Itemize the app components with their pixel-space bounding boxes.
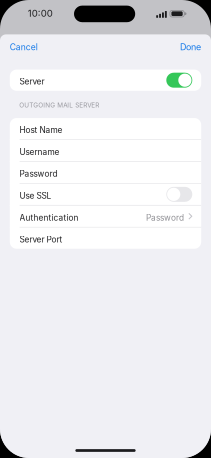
staticText: Server — [20, 77, 45, 87]
staticText: Password — [146, 213, 184, 223]
button[interactable]: Password — [10, 162, 201, 183]
button[interactable]: Use SSL — [10, 184, 201, 205]
staticText: Done — [180, 42, 201, 52]
staticText: Authentication — [20, 213, 79, 223]
staticText: 10:00 — [28, 7, 53, 19]
staticText: Use SSL — [20, 191, 52, 201]
button[interactable]: Host Name — [10, 118, 201, 139]
staticText: OUTGOING MAIL SERVER — [19, 101, 99, 109]
staticText: Cancel — [10, 42, 38, 52]
button[interactable]: Authentication — [10, 206, 201, 227]
staticText: Server Port — [20, 234, 63, 244]
button[interactable]: Server Port — [10, 227, 201, 249]
staticText: Host Name — [20, 125, 63, 135]
button[interactable]: Cancel — [0, 36, 45, 58]
button[interactable]: Done — [173, 36, 211, 58]
staticText: Password — [20, 169, 58, 179]
button[interactable]: Username — [10, 140, 201, 161]
staticText: Username — [20, 147, 60, 157]
